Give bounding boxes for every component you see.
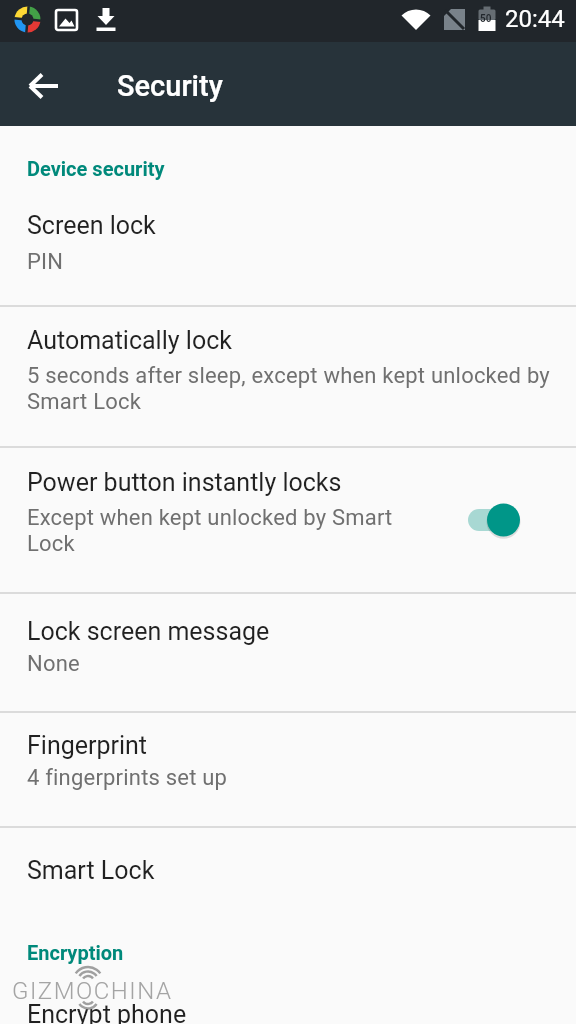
staticText: Screen lock — [27, 211, 156, 240]
button[interactable]: Encrypt phone — [0, 996, 576, 1024]
staticText: Automatically lock — [27, 326, 232, 355]
staticText: Lock screen message — [27, 617, 270, 646]
staticText: Encrypt phone — [27, 1000, 187, 1024]
button[interactable]: Lock screen message — [0, 594, 576, 711]
button[interactable]: Fingerprint — [0, 713, 576, 826]
staticText: 4 fingerprints set up — [27, 765, 228, 791]
staticText: Smart Lock — [27, 856, 155, 885]
staticText: Smart Lock — [27, 389, 142, 415]
button[interactable] — [16, 58, 72, 114]
staticText: Lock — [27, 531, 75, 557]
button[interactable]: Automatically lock — [0, 307, 576, 446]
staticText: PIN — [27, 249, 64, 275]
staticText: 5 seconds after sleep, except when kept … — [27, 363, 550, 389]
staticText: Fingerprint — [27, 731, 148, 760]
staticText: 20:44 — [505, 5, 565, 33]
button[interactable] — [468, 503, 520, 537]
staticText: Power button instantly locks — [27, 468, 342, 497]
staticText: None — [27, 651, 80, 677]
staticText: Except when kept unlocked by Smart — [27, 505, 393, 531]
button[interactable]: Power button instantly locks — [0, 448, 576, 592]
staticText: Encryption — [27, 941, 124, 964]
staticText: Security — [117, 69, 223, 103]
button[interactable]: Smart Lock — [0, 828, 576, 941]
button[interactable]: Screen lock — [0, 190, 576, 305]
staticText: GIZMOCHINA — [12, 977, 173, 1005]
staticText: 50 — [480, 13, 494, 25]
staticText: Device security — [27, 157, 165, 180]
